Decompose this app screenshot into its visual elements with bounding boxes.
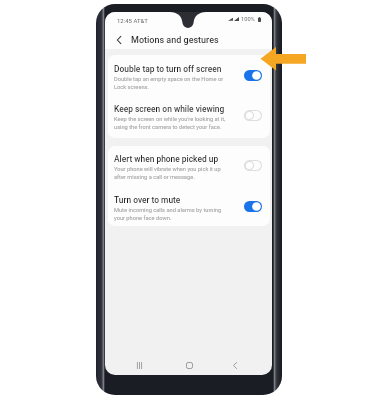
button[interactable]: Turn over to mute [108,195,270,226]
button[interactable]: Disabled [244,110,262,121]
staticText: 100% [241,16,255,23]
staticText: Mute incoming calls and alarms by turnin… [114,207,222,221]
staticText: Motions and gestures [131,35,219,46]
button[interactable]: Disabled [244,160,262,171]
button[interactable]: Home [179,355,199,375]
staticText: Alert when phone picked up [114,154,219,164]
button[interactable]: Back [225,355,245,375]
staticText: Turn over to mute [114,195,181,205]
button[interactable]: Double tap to turn off screen [108,64,270,98]
button[interactable]: Enabled [244,70,262,81]
staticText: Your phone will vibrate when you pick it… [114,166,221,180]
button[interactable]: Enabled [244,201,262,212]
staticText: Double tap an empty space on the Home or… [114,76,224,90]
staticText: Keep the screen on while you're looking … [114,116,226,130]
button[interactable]: Alert when phone picked up [108,154,270,188]
button[interactable]: Recent apps [129,355,149,375]
button[interactable]: Keep screen on while viewing [108,104,270,138]
staticText: Keep screen on while viewing [114,104,225,114]
staticText: 12:45 AT&T [117,17,148,24]
button[interactable]: Navigate up [107,29,127,48]
staticText: Double tap to turn off screen [114,64,222,74]
